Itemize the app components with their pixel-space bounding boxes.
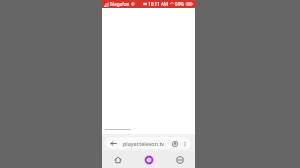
staticText: Megafon [110,1,130,7]
button[interactable]: Home [102,151,133,168]
button[interactable]: Opera menu [133,151,164,168]
staticText: 10:11 AM [148,1,169,7]
button[interactable]: Bookmark [170,139,179,148]
staticText: player.televon.tv [123,140,165,147]
button[interactable]: More options [180,139,189,148]
button[interactable]: Back [109,139,118,148]
button[interactable]: Tabs [164,151,195,168]
staticText: 99% [175,1,185,7]
button[interactable]: Back [106,137,191,149]
